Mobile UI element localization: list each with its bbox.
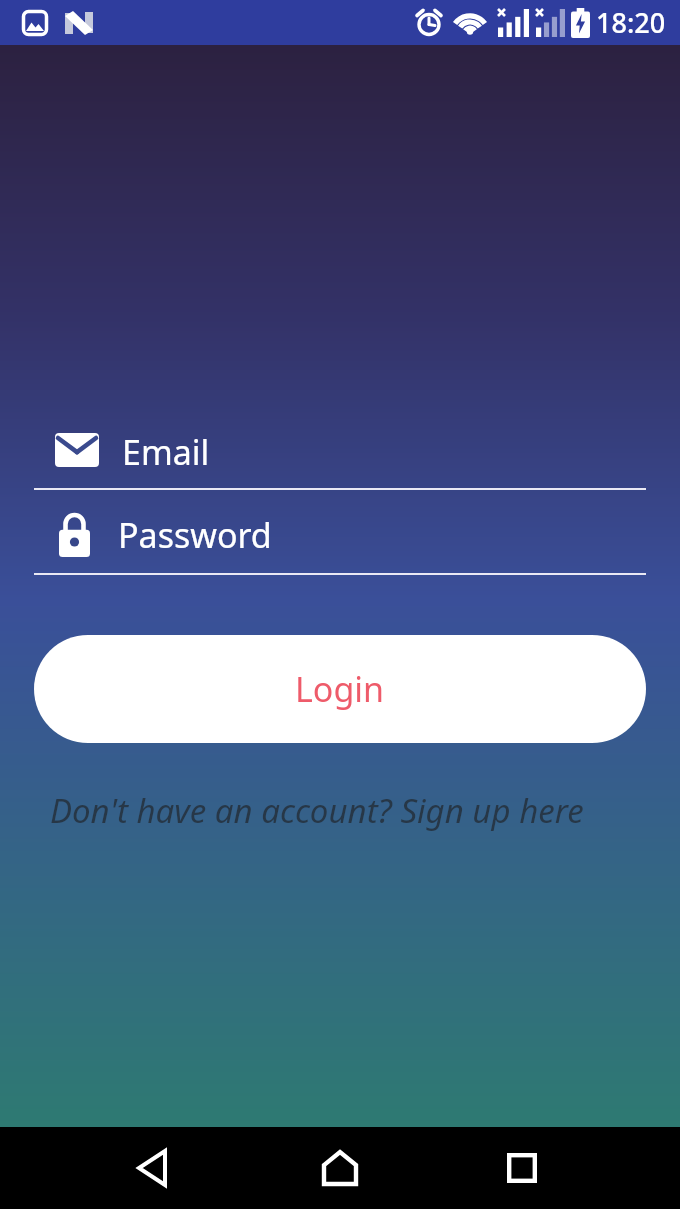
staticText: Login (295, 666, 385, 712)
button[interactable] (312, 1140, 368, 1196)
staticText: Email (122, 429, 210, 471)
button[interactable] (124, 1140, 180, 1196)
staticText: Password (118, 512, 272, 558)
button[interactable] (494, 1140, 550, 1196)
button[interactable]: Login (34, 635, 646, 743)
button[interactable]: Don't have an account? Sign up here (50, 788, 584, 833)
staticText: 18:20 (596, 4, 666, 41)
